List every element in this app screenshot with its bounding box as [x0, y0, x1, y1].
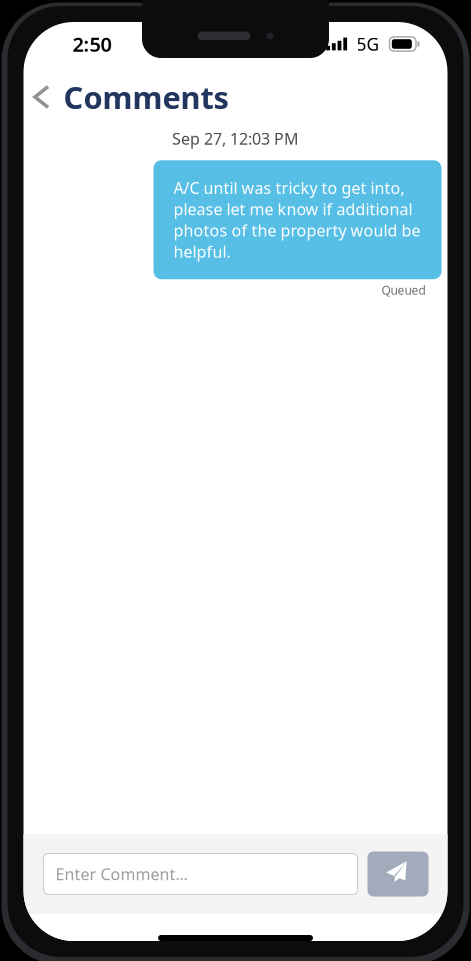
- staticText: Enter Comment...: [55, 863, 187, 885]
- button[interactable]: Back: [29, 73, 53, 121]
- staticText: A/C until was tricky to get into, please…: [173, 177, 420, 262]
- staticText: 2:50: [72, 31, 111, 57]
- button[interactable]: Enter Comment...: [43, 853, 357, 894]
- staticText: 5G: [356, 32, 379, 55]
- staticText: Comments: [63, 77, 228, 117]
- staticText: Queued: [381, 282, 425, 298]
- button[interactable]: Send: [367, 851, 428, 896]
- staticText: Sep 27, 12:03 PM: [172, 128, 299, 149]
